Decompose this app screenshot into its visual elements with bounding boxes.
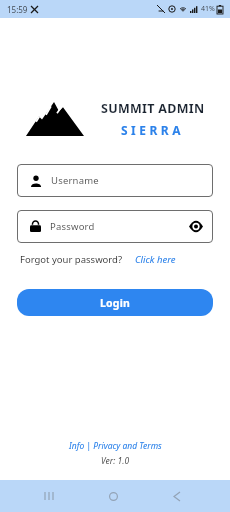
staticText: Ver: 1.0	[101, 455, 130, 467]
button[interactable]: Login	[17, 289, 213, 316]
staticText: Password	[50, 220, 95, 233]
staticText: Forgot your password?	[20, 253, 123, 266]
button[interactable]: Username	[17, 164, 213, 197]
button[interactable]: Info | Privacy and Terms	[69, 440, 162, 452]
button[interactable]	[81, 480, 145, 512]
staticText: SIERRA	[121, 122, 185, 138]
staticText: 15:59	[7, 4, 28, 15]
staticText: Username	[51, 174, 99, 187]
button[interactable]	[17, 480, 81, 512]
button[interactable]	[145, 480, 209, 512]
button[interactable]: Click here	[135, 253, 176, 266]
staticText: Login	[100, 296, 131, 310]
staticText: SUMMIT ADMIN	[101, 100, 205, 117]
button[interactable]: Password	[17, 210, 213, 243]
staticText: 41%	[201, 4, 215, 14]
